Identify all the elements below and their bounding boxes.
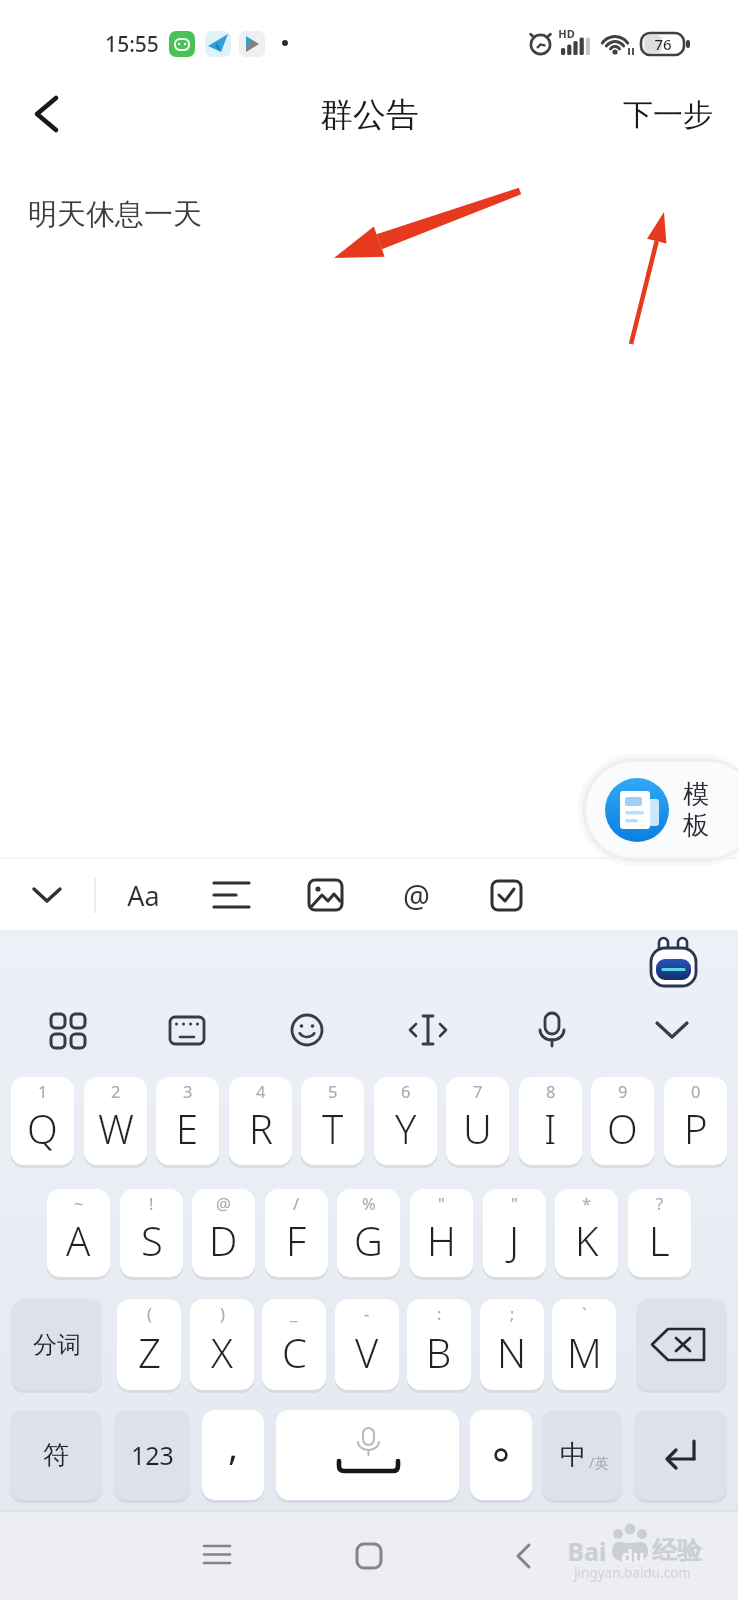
- staticText: /英: [589, 1453, 609, 1472]
- button[interactable]: 123: [114, 1410, 190, 1500]
- button[interactable]: !: [120, 1189, 183, 1277]
- button[interactable]: [498, 1530, 550, 1582]
- button[interactable]: [586, 762, 738, 858]
- staticText: K: [575, 1213, 599, 1267]
- staticText: @: [403, 875, 430, 916]
- staticText: du: [621, 1544, 645, 1568]
- staticText: 群公告: [320, 94, 419, 134]
- button[interactable]: ,: [202, 1410, 264, 1500]
- staticText: !: [149, 1192, 154, 1214]
- button[interactable]: [190, 1530, 242, 1582]
- button[interactable]: @: [192, 1189, 255, 1277]
- staticText: 8: [546, 1080, 556, 1102]
- button[interactable]: 5: [301, 1077, 364, 1165]
- staticText: F: [286, 1213, 307, 1267]
- button[interactable]: [276, 1410, 459, 1500]
- staticText: -: [364, 1302, 370, 1324]
- staticText: I: [544, 1101, 557, 1155]
- staticText: Q: [27, 1101, 58, 1155]
- button[interactable]: ?: [628, 1189, 691, 1277]
- button[interactable]: ~: [47, 1189, 110, 1277]
- button[interactable]: 1: [11, 1077, 74, 1165]
- button[interactable]: [162, 1006, 212, 1056]
- button[interactable]: ": [483, 1189, 546, 1277]
- staticText: U: [463, 1101, 492, 1155]
- button[interactable]: 0: [664, 1077, 727, 1165]
- staticText: O: [607, 1101, 638, 1155]
- staticText: `: [582, 1302, 587, 1324]
- button[interactable]: `: [552, 1299, 616, 1390]
- staticText: T: [322, 1101, 344, 1155]
- button[interactable]: 3: [156, 1077, 219, 1165]
- staticText: L: [649, 1213, 670, 1267]
- staticText: :: [437, 1302, 442, 1324]
- button[interactable]: 2: [84, 1077, 147, 1165]
- button[interactable]: [403, 1006, 453, 1056]
- button[interactable]: /: [265, 1189, 328, 1277]
- staticText: D: [209, 1213, 238, 1267]
- staticText: Bai: [567, 1534, 607, 1566]
- button[interactable]: [206, 868, 258, 920]
- staticText: W: [98, 1101, 134, 1155]
- staticText: 15:55: [105, 30, 159, 58]
- staticText: 明天休息一天: [28, 196, 202, 233]
- button[interactable]: 7: [446, 1077, 509, 1165]
- button[interactable]: [634, 1410, 727, 1500]
- button[interactable]: [20, 90, 70, 140]
- staticText: 2: [111, 1080, 121, 1102]
- button[interactable]: _: [262, 1299, 326, 1390]
- staticText: 5: [328, 1080, 338, 1102]
- button[interactable]: ): [190, 1299, 254, 1390]
- button[interactable]: 9: [591, 1077, 654, 1165]
- button[interactable]: 6: [374, 1077, 437, 1165]
- button[interactable]: 中: [542, 1410, 622, 1500]
- staticText: ": [511, 1192, 518, 1214]
- button[interactable]: ;: [480, 1299, 544, 1390]
- staticText: *: [582, 1192, 592, 1214]
- staticText: HD: [558, 26, 575, 40]
- staticText: ": [438, 1192, 445, 1214]
- staticText: 4: [256, 1080, 266, 1102]
- staticText: N: [497, 1325, 527, 1379]
- button[interactable]: [610, 90, 728, 136]
- staticText: E: [176, 1101, 199, 1155]
- button[interactable]: 4: [229, 1077, 292, 1165]
- staticText: Y: [395, 1101, 417, 1155]
- button[interactable]: 符: [10, 1410, 102, 1500]
- button[interactable]: [470, 1410, 532, 1500]
- button[interactable]: [526, 1006, 576, 1056]
- button[interactable]: :: [407, 1299, 471, 1390]
- button[interactable]: [300, 868, 352, 920]
- staticText: /: [293, 1192, 300, 1214]
- button[interactable]: [24, 868, 76, 920]
- button[interactable]: [645, 935, 701, 995]
- staticText: %: [362, 1192, 376, 1214]
- staticText: 6: [401, 1080, 411, 1102]
- button[interactable]: [42, 1006, 92, 1056]
- button[interactable]: [636, 1299, 727, 1390]
- button[interactable]: *: [555, 1189, 618, 1277]
- staticText: ~: [74, 1192, 84, 1214]
- staticText: 0: [691, 1080, 701, 1102]
- staticText: X: [211, 1325, 233, 1379]
- staticText: ;: [510, 1302, 515, 1324]
- button[interactable]: [118, 868, 170, 920]
- staticText: 模 板: [683, 778, 709, 842]
- staticText: V: [355, 1325, 379, 1379]
- button[interactable]: [282, 1006, 332, 1056]
- button[interactable]: [647, 1006, 697, 1056]
- button[interactable]: 8: [519, 1077, 582, 1165]
- button[interactable]: [343, 1530, 395, 1582]
- staticText: 下一步: [623, 96, 713, 134]
- button[interactable]: ": [410, 1189, 473, 1277]
- button[interactable]: 分词: [11, 1299, 102, 1390]
- button[interactable]: -: [335, 1299, 399, 1390]
- button[interactable]: [482, 868, 534, 920]
- button[interactable]: %: [337, 1189, 400, 1277]
- staticText: Z: [138, 1325, 161, 1379]
- staticText: 7: [473, 1080, 483, 1102]
- button[interactable]: [392, 868, 444, 920]
- staticText: ?: [656, 1192, 664, 1214]
- staticText: M: [567, 1325, 602, 1379]
- button[interactable]: (: [117, 1299, 181, 1390]
